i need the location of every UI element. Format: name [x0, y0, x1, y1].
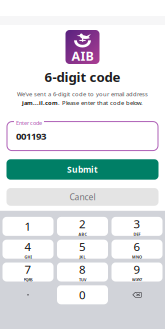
staticText: TUV — [79, 277, 86, 282]
button[interactable]: 3 — [111, 217, 162, 236]
button[interactable]: 0 — [57, 285, 108, 304]
staticText: 3 — [133, 216, 140, 232]
staticText: Enter code — [16, 119, 42, 126]
staticText: AIB — [71, 47, 93, 65]
button[interactable]: 7 — [2, 262, 53, 281]
staticText: 001193 — [16, 129, 46, 143]
button[interactable]: 9 — [111, 262, 162, 281]
staticText: 1 — [24, 219, 31, 234]
staticText: 4 — [24, 239, 31, 254]
staticText: 6 — [133, 239, 140, 254]
button[interactable]: Delete — [111, 285, 162, 304]
button[interactable]: Decimal point — [2, 285, 53, 304]
staticText: 2 — [79, 216, 86, 232]
button[interactable]: 1 — [2, 217, 53, 236]
button[interactable]: Cancel — [6, 188, 158, 206]
staticText: WXYZ — [132, 277, 142, 282]
staticText: 0 — [79, 287, 86, 303]
staticText: PQRS — [23, 277, 32, 282]
button[interactable]: 8 — [57, 262, 108, 281]
button[interactable]: 6 — [111, 240, 162, 259]
staticText: 5 — [79, 239, 86, 254]
staticText: We've sent a 6-digit code to your email … — [17, 90, 148, 98]
staticText: jam...il.com. Please enter that code bel… — [22, 99, 143, 107]
staticText: 8 — [79, 262, 86, 277]
staticText: 6-digit code — [44, 68, 120, 86]
staticText: GHI — [24, 254, 31, 260]
staticText: ABC — [78, 232, 86, 237]
staticText: Cancel — [69, 191, 95, 203]
staticText: 7 — [24, 262, 31, 277]
button[interactable]: 2 — [57, 217, 108, 236]
staticText: MNO — [132, 254, 142, 260]
staticText: Submit — [67, 164, 98, 175]
button[interactable]: Submit — [6, 159, 158, 180]
staticText: JKL — [79, 254, 85, 260]
button[interactable]: 4 — [2, 240, 53, 259]
button[interactable]: 5 — [57, 240, 108, 259]
staticText: 9 — [133, 262, 140, 277]
staticText: DEF — [133, 232, 140, 237]
